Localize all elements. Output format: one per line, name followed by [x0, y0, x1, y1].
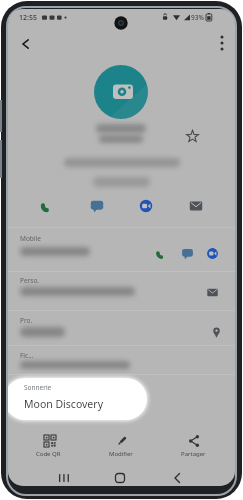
- staticText: Code QR: [36, 450, 61, 458]
- button[interactable]: [35, 194, 59, 218]
- button[interactable]: [184, 194, 208, 218]
- button[interactable]: [54, 469, 74, 486]
- button[interactable]: [179, 245, 196, 262]
- staticText: 12:55: [19, 13, 37, 23]
- button[interactable]: [14, 33, 36, 55]
- button[interactable]: [134, 194, 158, 218]
- button[interactable]: [185, 129, 200, 144]
- button[interactable]: [208, 324, 225, 341]
- staticText: Partager: [181, 450, 206, 458]
- button[interactable]: [110, 469, 130, 486]
- staticText: Pro.: [20, 316, 33, 325]
- button[interactable]: Partager: [174, 434, 214, 466]
- button[interactable]: [204, 245, 221, 262]
- staticText: Mobile: [20, 234, 41, 243]
- button[interactable]: [153, 245, 170, 262]
- staticText: Modifier: [109, 450, 133, 458]
- staticText: Perso.: [20, 276, 40, 285]
- button[interactable]: [85, 194, 109, 218]
- button[interactable]: [8, 378, 147, 420]
- staticText: Sonnerie: [24, 383, 52, 392]
- button[interactable]: [167, 469, 187, 486]
- staticText: Fic...: [20, 351, 34, 360]
- staticText: Moon Discovery: [24, 397, 103, 411]
- button[interactable]: Code QR: [30, 434, 70, 466]
- staticText: 93%: [191, 13, 204, 22]
- button[interactable]: [211, 32, 233, 54]
- button[interactable]: Modifier: [102, 434, 142, 466]
- button[interactable]: [204, 284, 221, 301]
